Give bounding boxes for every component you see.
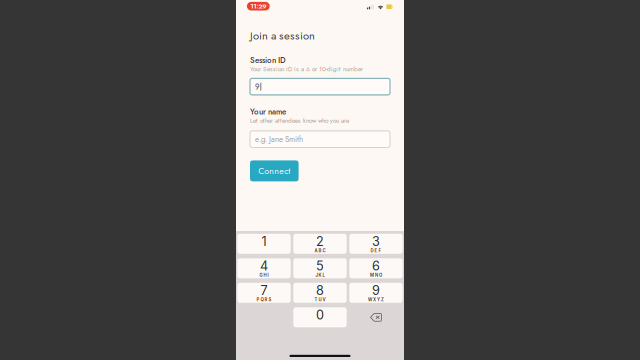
staticText: 9 xyxy=(255,81,260,92)
button[interactable]: 1 xyxy=(237,234,291,254)
staticText: P Q R S xyxy=(256,297,271,302)
staticText: 2 xyxy=(316,234,324,249)
button[interactable]: 4 xyxy=(237,258,291,278)
staticText: A B C xyxy=(314,248,325,253)
staticText: W X Y Z xyxy=(368,297,384,302)
staticText: J K L xyxy=(315,272,324,278)
staticText: 4 xyxy=(260,258,268,274)
staticText: 11:29 xyxy=(250,1,266,11)
button[interactable]: 8 xyxy=(293,283,347,303)
staticText: 1 xyxy=(261,234,266,249)
staticText: 5 xyxy=(316,258,324,274)
button[interactable]: e.g. Jane Smith xyxy=(250,131,390,147)
button[interactable]: Connect xyxy=(250,160,299,181)
button[interactable]: 5 xyxy=(293,258,347,278)
staticText: Connect xyxy=(258,164,290,177)
button[interactable]: 0 xyxy=(293,307,347,327)
button[interactable]: 3 xyxy=(349,234,403,254)
staticText: Join a session xyxy=(250,27,315,44)
staticText: 6 xyxy=(372,258,380,274)
staticText: Your Session ID is a 6 or 10-digit numbe… xyxy=(250,64,363,74)
staticText: e.g. Jane Smith xyxy=(255,133,303,145)
staticText: 0 xyxy=(316,307,324,323)
staticText: T U V xyxy=(314,297,325,302)
staticText: D E F xyxy=(370,248,381,253)
staticText: Let other attendees know who you are xyxy=(250,116,349,125)
staticText: 3 xyxy=(372,234,380,249)
staticText: Session ID xyxy=(250,54,286,66)
staticText: M N O xyxy=(370,272,382,278)
staticText: G H I xyxy=(259,272,268,278)
button[interactable]: 9 xyxy=(250,78,390,95)
button[interactable]: Delete xyxy=(349,307,403,327)
staticText: 8 xyxy=(316,283,324,298)
button[interactable]: 9 xyxy=(349,283,403,303)
staticText: 7 xyxy=(260,283,267,298)
staticText: Your name xyxy=(250,106,286,117)
button[interactable]: 2 xyxy=(293,234,347,254)
button[interactable]: 6 xyxy=(349,258,403,278)
button[interactable]: 7 xyxy=(237,283,291,303)
staticText: 9 xyxy=(372,283,380,298)
